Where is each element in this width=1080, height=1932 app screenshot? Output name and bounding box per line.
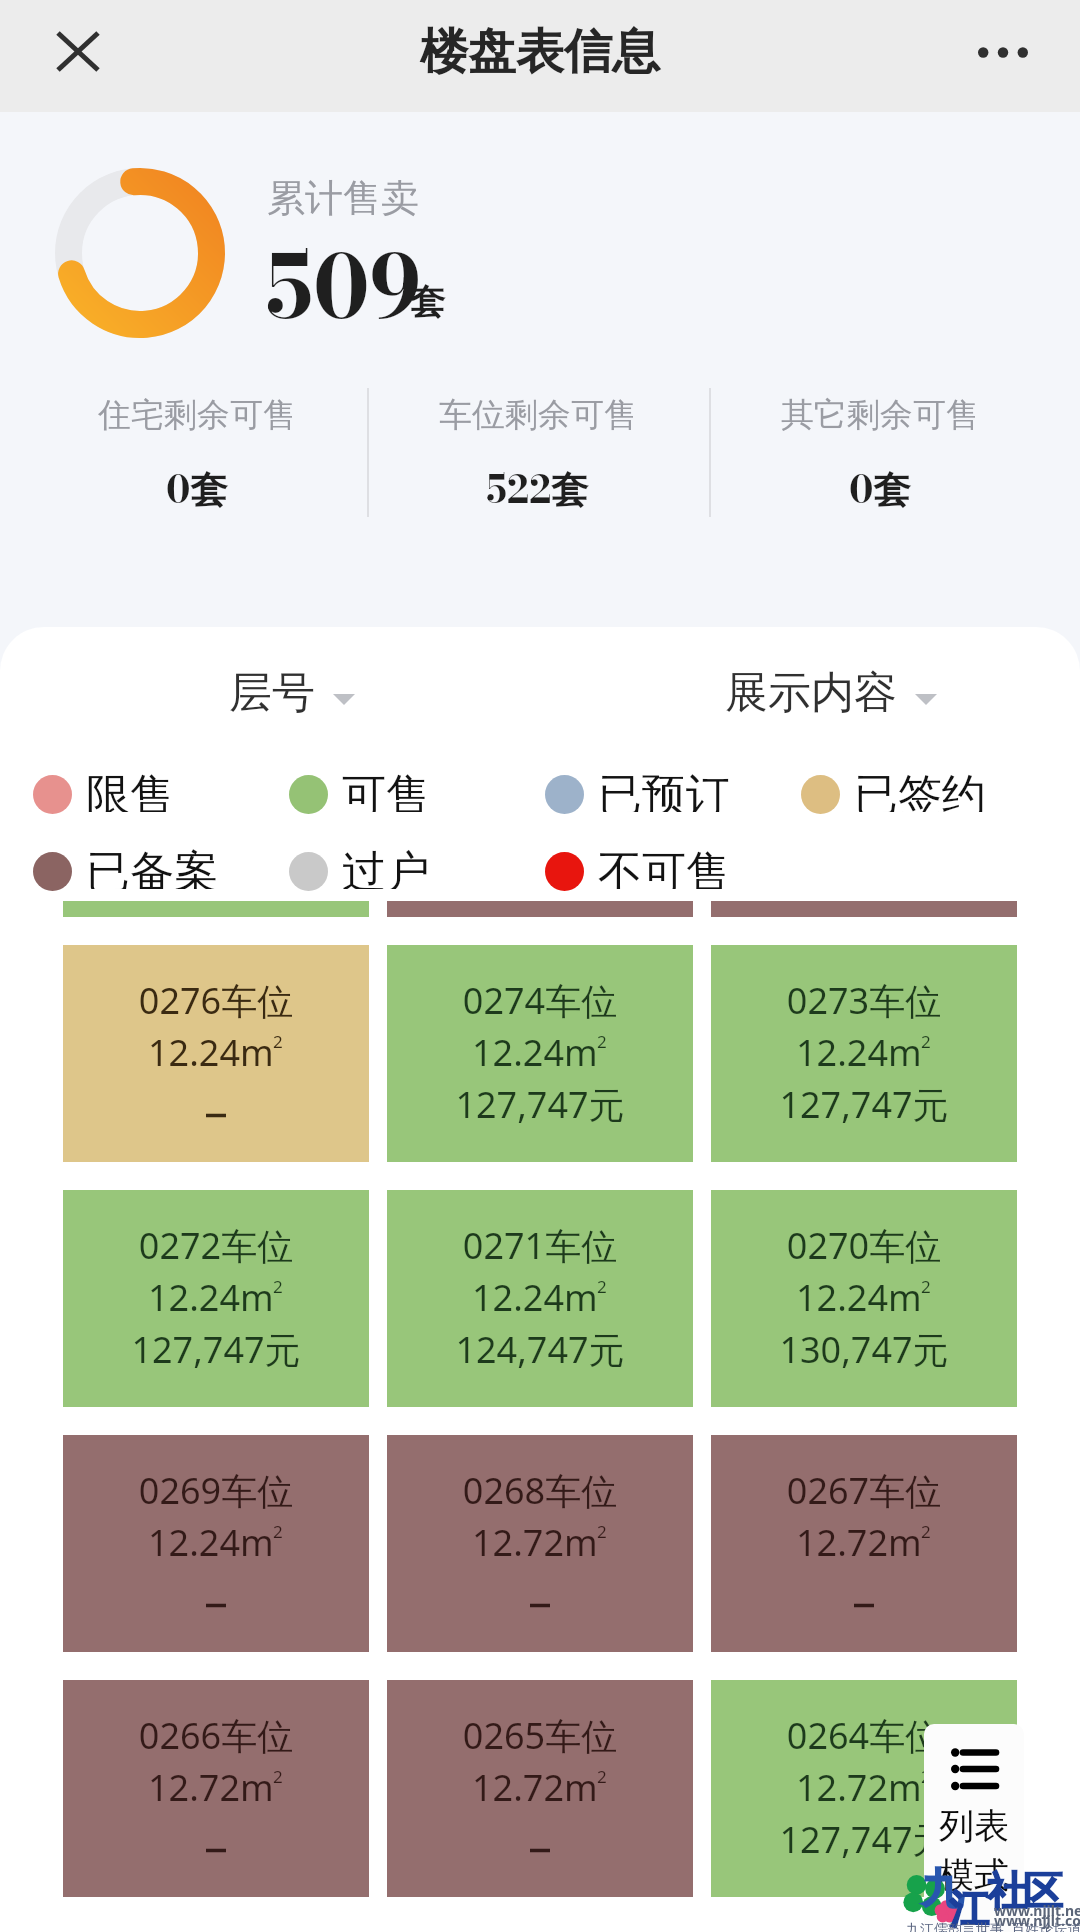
staticText: 2 (597, 1275, 607, 1298)
staticText: 12.24m (796, 1028, 922, 1077)
staticText: 0268车位 (387, 1466, 693, 1515)
staticText: 0276车位 (63, 976, 369, 1025)
staticText: 0272车位 (63, 1221, 369, 1270)
button[interactable]: Close (38, 13, 118, 89)
staticText: 12.24m (148, 1273, 274, 1322)
staticText: 2 (597, 1765, 607, 1788)
staticText: 127,747元 (711, 1815, 1017, 1864)
staticText: 127,747元 (711, 1080, 1017, 1129)
staticText: 2 (273, 1520, 283, 1543)
staticText: 2 (921, 1765, 931, 1788)
button[interactable]: 0266车位 (63, 1680, 369, 1897)
staticText: 2 (921, 1520, 931, 1543)
staticText: 2 (597, 1030, 607, 1053)
staticText: 2 (273, 1275, 283, 1298)
staticText: 模式 (924, 1853, 1024, 1897)
staticText: 已备案 (86, 845, 218, 889)
staticText: 2 (273, 1030, 283, 1053)
button[interactable]: 0269车位 (63, 1435, 369, 1652)
staticText: 社 (987, 1866, 1027, 1916)
staticText: 层号 (229, 666, 315, 720)
button[interactable]: 0268车位 (387, 1435, 693, 1652)
button[interactable]: 0267车位 (711, 1435, 1017, 1652)
staticText: 127,747元 (387, 1080, 693, 1129)
staticText: 12.24m (796, 1273, 922, 1322)
button[interactable]: List mode (924, 1724, 1024, 1932)
staticText: 累计售卖 (267, 174, 419, 222)
staticText: 127,747元 (63, 1325, 369, 1374)
button[interactable]: 0264车位 (711, 1680, 1017, 1897)
staticText: 0270车位 (711, 1221, 1017, 1270)
staticText: 0266车位 (63, 1711, 369, 1760)
staticText: 区 (1023, 1866, 1063, 1916)
staticText: 展示内容 (725, 666, 897, 720)
staticText: 0267车位 (711, 1466, 1017, 1515)
staticText: 限售 (86, 768, 174, 812)
staticText: 0265车位 (387, 1711, 693, 1760)
staticText: 2 (597, 1520, 607, 1543)
staticText: 12.24m (472, 1028, 598, 1077)
staticText: 0274车位 (387, 976, 693, 1025)
staticText: 12.72m (472, 1763, 598, 1812)
button[interactable]: 0276车位 (63, 945, 369, 1162)
staticText: www.njjlt.net (994, 1901, 1080, 1920)
staticText: www.njjlt.com (994, 1911, 1080, 1930)
staticText: 12.24m (472, 1273, 598, 1322)
staticText: 124,747元 (387, 1325, 693, 1374)
staticText: 其它剩余可售 (781, 394, 979, 436)
button[interactable]: 层号 (213, 654, 371, 736)
button[interactable]: 0274车位 (387, 945, 693, 1162)
staticText: 2 (921, 1275, 931, 1298)
staticText: 12.72m (796, 1763, 922, 1812)
staticText: 过户 (342, 845, 430, 889)
staticText: 2 (273, 1765, 283, 1788)
staticText: 509 (267, 221, 423, 352)
staticText: 12.72m (148, 1763, 274, 1812)
staticText: 可售 (342, 768, 430, 812)
staticText: 0271车位 (387, 1221, 693, 1270)
staticText: 522套 (487, 461, 589, 517)
staticText: 0264车位 (711, 1711, 1017, 1760)
button[interactable]: 展示内容 (709, 654, 953, 736)
button[interactable]: 0272车位 (63, 1190, 369, 1407)
button[interactable]: 0265车位 (387, 1680, 693, 1897)
staticText: 12.72m (796, 1518, 922, 1567)
staticText: 0269车位 (63, 1466, 369, 1515)
staticText: 江 (949, 1884, 989, 1932)
button[interactable]: 0273车位 (711, 945, 1017, 1162)
staticText: 0套 (166, 461, 228, 517)
staticText: 0273车位 (711, 976, 1017, 1025)
staticText: 住宅剩余可售 (98, 394, 296, 436)
staticText: 车位剩余可售 (439, 394, 637, 436)
staticText: 已预订 (598, 768, 730, 812)
staticText: 12.24m (148, 1518, 274, 1567)
staticText: 2 (921, 1030, 931, 1053)
staticText: 130,747元 (711, 1325, 1017, 1374)
staticText: 0套 (849, 461, 911, 517)
button[interactable]: More options (953, 22, 1053, 82)
staticText: 列表 (924, 1804, 1024, 1848)
staticText: 不可售 (598, 845, 730, 889)
staticText: 12.72m (472, 1518, 598, 1567)
staticText: 已签约 (854, 768, 986, 812)
staticText: 九江儒韵言世事 百姓论坛道民生 (906, 1919, 1080, 1932)
staticText: 12.24m (148, 1028, 274, 1077)
button[interactable]: 0271车位 (387, 1190, 693, 1407)
staticText: 楼盘表信息 (420, 22, 660, 82)
button[interactable]: 0270车位 (711, 1190, 1017, 1407)
staticText: 九 (921, 1863, 963, 1916)
staticText: 套 (410, 280, 445, 324)
